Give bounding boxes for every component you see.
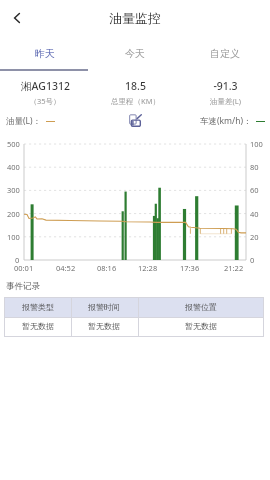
staticText: 油量(L)： [6,115,42,127]
staticText: 0 [15,255,20,265]
staticText: 车速(km/h)： [200,115,252,127]
staticText: 100 [250,139,263,149]
staticText: 暂无数据 [88,321,120,331]
staticText: 400 [7,162,20,172]
staticText: 60 [250,185,259,195]
staticText: 200 [7,209,20,219]
staticText: 油量监控 [109,10,161,26]
staticText: 80 [250,162,259,172]
button[interactable]: 昨天 [0,36,90,72]
staticText: 湘AG1312 [21,79,70,93]
staticText: 40 [250,209,259,219]
staticText: -91.3 [213,79,238,93]
staticText: 报警位置 [185,302,217,312]
staticText: 事件记录 [6,281,40,292]
staticText: 08:16 [97,263,117,273]
staticText: 21:22 [224,263,244,273]
staticText: 今天 [125,47,145,60]
staticText: 20 [250,232,259,242]
staticText: 12:28 [138,263,158,273]
button[interactable]: Back [0,1,34,35]
staticText: 报警时间 [88,302,120,312]
staticText: 17:36 [180,263,200,273]
staticText: 0 [250,255,255,265]
staticText: 自定义 [210,47,240,60]
staticText: 总里程（KM） [111,96,160,106]
button[interactable]: 今天 [90,36,180,72]
button[interactable]: Rotate screen [126,112,144,130]
staticText: 报警类型 [22,302,54,312]
staticText: 昨天 [35,47,55,60]
staticText: 暂无数据 [22,321,54,331]
staticText: 油量差(L) [210,96,241,106]
button[interactable]: 自定义 [180,36,270,72]
staticText: 100 [7,232,20,242]
staticText: 500 [7,139,20,149]
staticText: 04:52 [56,263,76,273]
staticText: 18.5 [125,79,146,93]
staticText: 暂无数据 [185,321,217,331]
staticText: （35号） [29,96,61,106]
staticText: 300 [7,185,20,195]
staticText: 00:01 [14,263,34,273]
